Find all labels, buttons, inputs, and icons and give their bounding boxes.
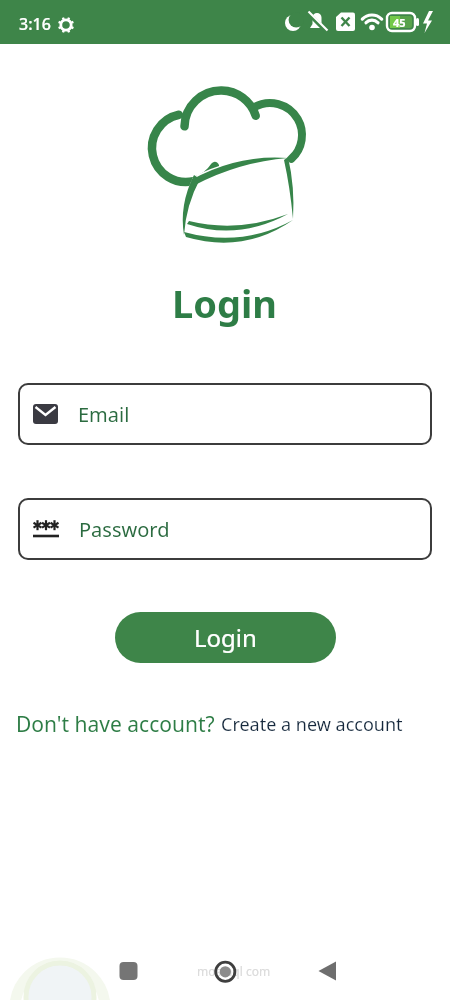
staticText: Login	[172, 277, 278, 329]
button[interactable]: Email	[18, 383, 432, 445]
button[interactable]: Password	[18, 498, 432, 560]
staticText: Login	[194, 621, 257, 654]
staticText: mostaql com	[197, 963, 271, 979]
staticText: Don't have account?	[16, 710, 221, 739]
staticText: Email	[78, 401, 130, 428]
staticText: Password	[79, 516, 170, 543]
staticText: 45	[393, 15, 406, 30]
button[interactable]: Create a new account	[221, 712, 403, 737]
button[interactable]: Login	[115, 612, 336, 663]
staticText: 3:16	[19, 13, 51, 35]
